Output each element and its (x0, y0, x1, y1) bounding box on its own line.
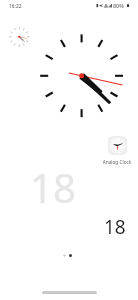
staticText: 16:22 (9, 3, 22, 10)
staticText: 80% (113, 2, 124, 9)
button[interactable]: Analog Clock (99, 136, 135, 165)
staticText: 18 (30, 160, 76, 214)
staticText: 18 (104, 214, 126, 240)
staticText: Analog Clock (99, 159, 135, 165)
other: Analog clock (36, 31, 127, 122)
button[interactable]: Clock widget (5, 22, 34, 51)
